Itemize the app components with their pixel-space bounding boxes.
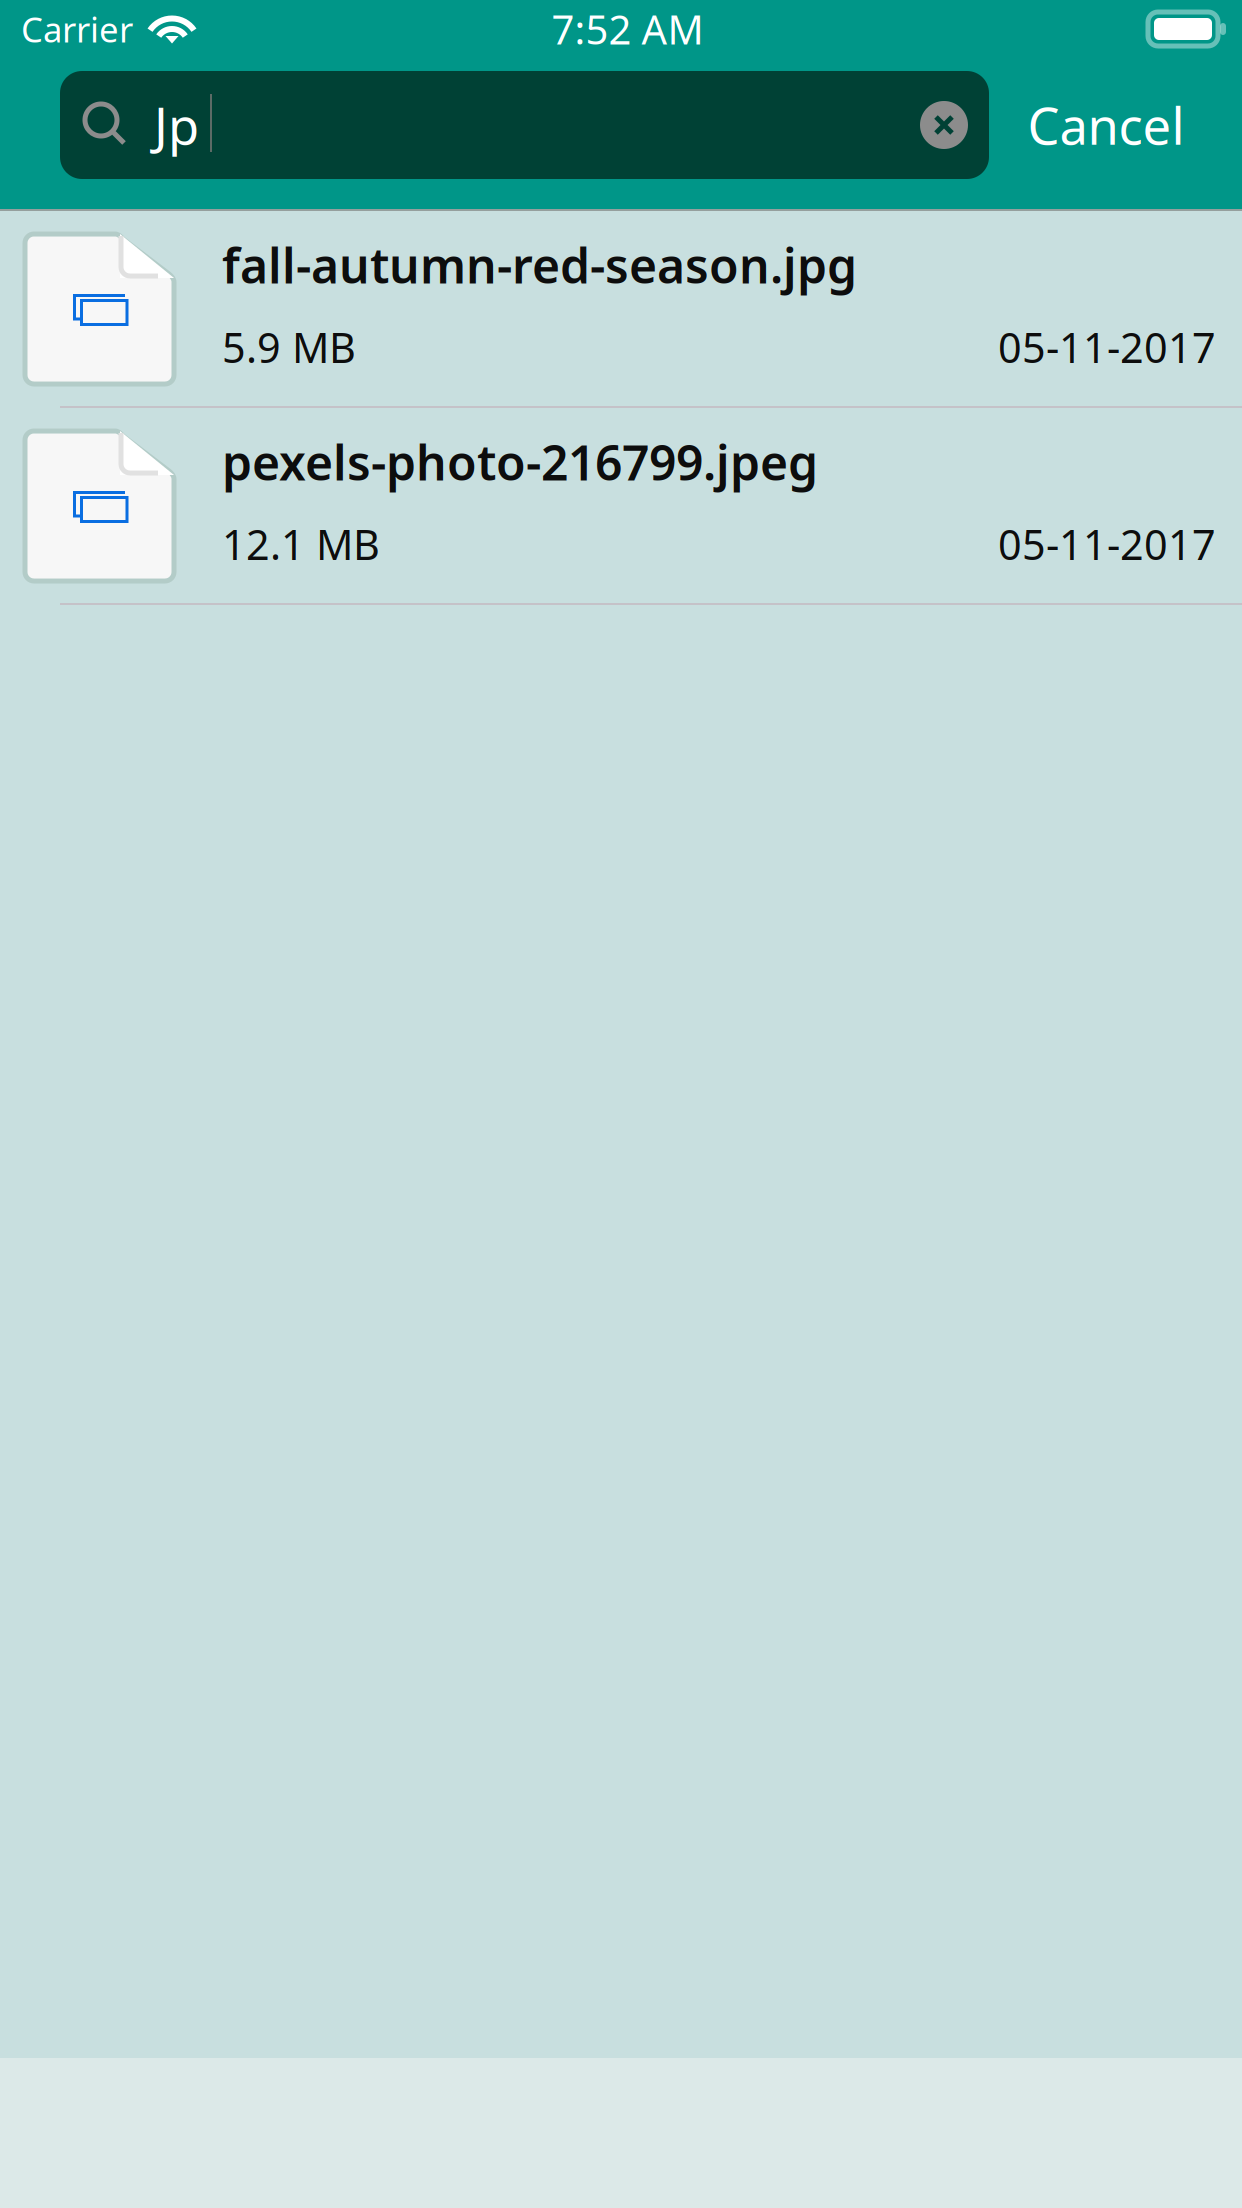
staticText: 7:52 AM bbox=[551, 2, 703, 55]
button[interactable]: pexels-photo-216799.jpeg bbox=[0, 408, 1242, 605]
staticText: Cancel bbox=[1027, 91, 1184, 159]
staticText: 05-11-2017 bbox=[998, 320, 1216, 374]
staticText: fall-autumn-red-season.jpg bbox=[222, 233, 857, 297]
button[interactable]: Clear text bbox=[920, 71, 989, 179]
staticText: 05-11-2017 bbox=[998, 517, 1216, 571]
button[interactable]: Search field, Jp bbox=[60, 71, 989, 179]
staticText: 5.9 MB bbox=[222, 320, 356, 374]
staticText: Jp bbox=[154, 91, 199, 159]
staticText: pexels-photo-216799.jpeg bbox=[222, 430, 818, 494]
button[interactable]: fall-autumn-red-season.jpg bbox=[0, 211, 1242, 408]
button[interactable]: Cancel bbox=[989, 71, 1211, 179]
staticText: Carrier bbox=[21, 6, 133, 52]
staticText: 12.1 MB bbox=[222, 517, 380, 571]
